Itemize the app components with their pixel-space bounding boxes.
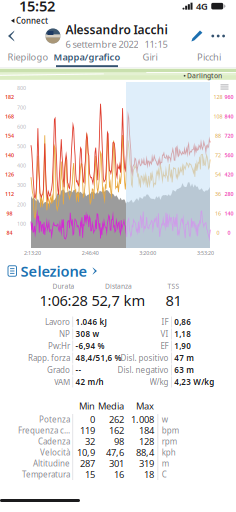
staticText: 300 — [17, 181, 26, 188]
staticText: 420 — [224, 171, 233, 178]
staticText: 319 — [139, 457, 154, 470]
staticText: 0 — [216, 229, 219, 236]
staticText: Riepilogo — [7, 51, 48, 63]
staticText: 15:52 — [19, 0, 55, 15]
staticText: kph — [162, 447, 176, 458]
staticText: 72 — [215, 152, 221, 159]
staticText: Mappa/grafico — [53, 51, 120, 63]
staticText: 100 — [17, 220, 26, 227]
staticText: 98 — [114, 435, 124, 448]
staticText: 140 — [5, 152, 14, 159]
staticText: Selezione — [20, 261, 87, 281]
staticText: 200 — [17, 201, 26, 208]
staticText: 0 — [90, 413, 95, 426]
staticText: 47 m — [174, 353, 194, 363]
staticText: 500 — [17, 143, 26, 150]
staticText: Rapp. forza — [28, 353, 70, 363]
staticText: 63 m — [174, 365, 194, 375]
staticText: 6 settembre 2022 — [65, 38, 138, 50]
staticText: 88 — [215, 132, 221, 139]
button[interactable]: Back — [0, 24, 24, 47]
staticText: EF — [161, 341, 169, 351]
staticText: 3:20:00 — [139, 249, 156, 257]
staticText: 18 — [144, 468, 154, 481]
staticText: 84 — [6, 229, 12, 236]
staticText: 112 — [5, 190, 14, 197]
staticText: 1,18 — [174, 329, 191, 339]
staticText: bpm — [162, 425, 179, 436]
staticText: 2:46:40 — [82, 249, 99, 257]
staticText: 11:15 — [144, 38, 167, 50]
staticText: 42 m/h — [76, 377, 104, 387]
staticText: 1,90 — [174, 341, 191, 351]
staticText: W/kg — [150, 377, 169, 387]
button[interactable]: Riepilogo — [0, 50, 56, 68]
staticText: IF — [162, 317, 169, 327]
button[interactable]: Mappa/grafico — [56, 50, 118, 68]
staticText: Altitudine — [33, 458, 70, 469]
staticText: 560 — [224, 152, 233, 159]
staticText: Disl. negativo — [118, 365, 169, 375]
staticText: TSS — [167, 282, 179, 291]
staticText: 308 w — [76, 329, 100, 339]
staticText: Lavoro — [45, 317, 70, 327]
staticText: Temperatura — [22, 469, 70, 480]
button[interactable]: Edit — [188, 24, 205, 47]
staticText: Media — [98, 400, 124, 412]
staticText: 119 — [80, 424, 95, 437]
button[interactable]: Giri — [118, 50, 182, 68]
staticText: 4,23 W/kg — [174, 377, 214, 387]
staticText: m — [162, 458, 169, 469]
staticText: Disl. positivo — [121, 353, 169, 363]
staticText: 154 — [5, 132, 14, 139]
staticText: VI — [161, 329, 169, 339]
staticText: 36 — [215, 190, 221, 197]
staticText: 48,4/51,6 % — [76, 353, 122, 363]
staticText: 840 — [224, 113, 233, 120]
staticText: C — [162, 469, 167, 480]
staticText: 47,6 — [106, 446, 124, 459]
staticText: 16 — [114, 468, 124, 481]
staticText: 168 — [5, 113, 14, 120]
button[interactable]: More options — [205, 27, 231, 45]
staticText: 54 — [215, 171, 221, 178]
staticText: 3:53:20 — [197, 249, 214, 257]
staticText: Distanza — [105, 282, 132, 291]
staticText: 88,4 — [136, 446, 154, 459]
staticText: NP — [59, 329, 70, 339]
staticText: 600 — [17, 123, 26, 130]
staticText: 1:06:28 — [39, 291, 87, 310]
staticText: 262 — [109, 413, 124, 426]
staticText: 720 — [224, 132, 233, 139]
staticText: Durata — [52, 282, 74, 291]
staticText: Picchi — [197, 51, 221, 63]
staticText: Max — [136, 400, 154, 412]
button[interactable]: Selezione — [0, 260, 236, 282]
staticText: Cadenza — [38, 436, 70, 447]
staticText: 1.008 — [131, 413, 154, 426]
staticText: Pw:Hr — [48, 341, 70, 351]
staticText: Giri — [142, 51, 157, 63]
staticText: 0 — [227, 229, 230, 236]
staticText: 182 — [5, 93, 14, 100]
staticText: 10,9 — [77, 446, 95, 459]
staticText: 162 — [109, 424, 124, 437]
staticText: 1.046 kJ — [76, 317, 107, 327]
staticText: 280 — [224, 190, 233, 197]
staticText: Potenza — [39, 414, 70, 425]
staticText: Grado — [47, 365, 70, 375]
staticText: 128 — [139, 435, 154, 448]
staticText: 32 — [85, 435, 95, 448]
staticText: rpm — [162, 436, 177, 447]
staticText: -- — [76, 365, 82, 375]
staticText: 2:13:20 — [24, 249, 41, 257]
staticText: 0,86 — [174, 317, 191, 327]
staticText: Min — [79, 400, 95, 412]
staticText: 4G — [196, 0, 208, 12]
staticText: 301 — [109, 457, 124, 470]
staticText: Velocità — [40, 447, 70, 458]
staticText: 16 — [215, 210, 221, 217]
staticText: -6,94 % — [76, 341, 105, 351]
staticText: 81 — [165, 291, 181, 310]
button[interactable]: Picchi — [182, 50, 236, 68]
